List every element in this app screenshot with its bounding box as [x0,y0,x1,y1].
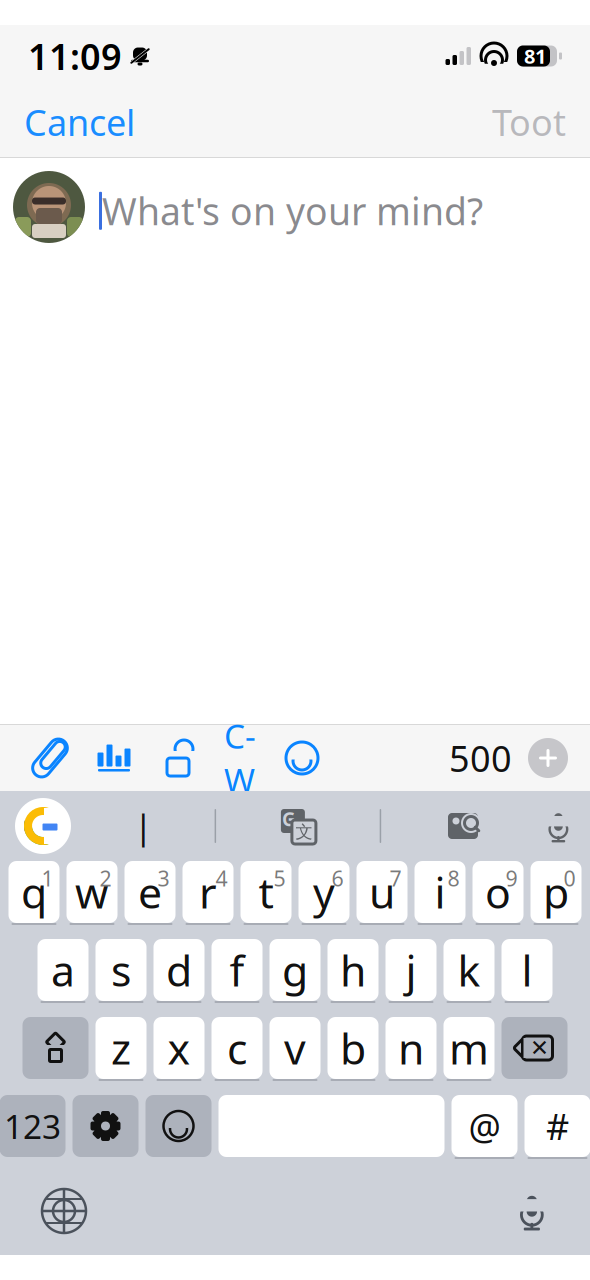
staticText: b [340,1020,366,1076]
button[interactable]: Image search [443,806,483,846]
button[interactable]: s [95,939,146,1001]
button[interactable]: z [95,1017,146,1079]
button[interactable]: Insert emoji [270,738,334,778]
button[interactable]: Shift [22,1017,88,1079]
button[interactable]: Toot [468,84,590,160]
staticText: e [138,864,162,920]
button[interactable]: Translate [278,806,318,846]
staticText: o [485,864,511,920]
button[interactable]: y [298,861,349,923]
staticText: t [258,864,273,920]
button[interactable]: f [211,939,262,1001]
button[interactable]: Cancel [0,84,159,160]
staticText: 文 [295,821,312,843]
button[interactable]: w [66,861,117,923]
button[interactable]: n [385,1017,436,1079]
staticText: What's on your mind? [102,186,483,236]
button[interactable]: Google [0,797,72,855]
button[interactable]: m [443,1017,494,1079]
button[interactable]: k [443,939,494,1001]
staticText: a [51,942,75,998]
staticText: 4 [215,864,227,892]
staticText: k [457,942,480,998]
staticText: c [227,1020,247,1076]
button[interactable]: Keyboard settings [72,1095,138,1157]
staticText: v [284,1020,306,1076]
staticText: x [167,1020,190,1076]
staticText: l [521,942,532,998]
button[interactable]: g [269,939,320,1001]
staticText: G [282,807,296,831]
staticText: 11:09 [28,32,122,80]
button[interactable]: Voice input [545,808,590,844]
staticText: ✕ [530,1035,549,1061]
staticText: 7 [389,864,401,892]
button[interactable]: 123 [0,1095,65,1157]
button[interactable]: Delete [501,1017,567,1079]
staticText: 5 [273,864,285,892]
button[interactable]: o [472,861,523,923]
button[interactable]: a [37,939,88,1001]
staticText: 2 [99,864,111,892]
staticText: 6 [331,864,343,892]
button[interactable]: b [327,1017,378,1079]
button[interactable]: # [524,1095,590,1157]
staticText: j [405,942,416,998]
staticText: @ [468,1102,500,1150]
staticText: r [199,864,217,920]
button[interactable]: r [182,861,233,923]
button[interactable]: Dictate [516,1189,590,1233]
button[interactable]: t [240,861,291,923]
button[interactable]: Switch keyboard [0,1187,88,1235]
button[interactable]: e [124,861,175,923]
staticText: CW [224,714,256,802]
staticText: | [134,803,153,849]
button[interactable]: Add attachment [18,738,82,778]
button[interactable]: Add poll [82,738,146,778]
staticText: s [111,942,131,998]
staticText: 0 [563,864,575,892]
button[interactable]: c [211,1017,262,1079]
button[interactable]: l [501,939,552,1001]
staticText: w [75,864,109,920]
button[interactable]: h [327,939,378,1001]
button[interactable]: i [414,861,465,923]
button[interactable]: u [356,861,407,923]
button[interactable]: x [153,1017,204,1079]
staticText: g [282,942,308,998]
button[interactable]: Emoji [145,1095,211,1157]
staticText: n [398,1020,424,1076]
staticText: f [229,942,244,998]
staticText: q [21,864,47,920]
staticText: 123 [4,1104,61,1148]
button[interactable]: CW [210,738,270,778]
staticText: Toot [492,98,566,146]
staticText: h [340,942,366,998]
staticText: p [543,864,569,920]
staticText: Cancel [24,98,135,146]
button[interactable]: Visibility [146,738,210,778]
staticText: 9 [505,864,517,892]
button[interactable]: v [269,1017,320,1079]
staticText: z [111,1020,131,1076]
staticText: # [546,1102,569,1150]
button[interactable]: Space [218,1095,444,1157]
staticText: 500 [449,734,512,782]
staticText: 3 [157,864,169,892]
staticText: d [166,942,192,998]
button[interactable]: j [385,939,436,1001]
staticText: y [313,864,335,920]
button[interactable]: p [530,861,581,923]
staticText: u [369,864,395,920]
staticText: 1 [41,864,53,892]
button[interactable]: @ [451,1095,517,1157]
staticText: i [434,864,445,920]
staticText: m [449,1020,489,1076]
button[interactable]: q [8,861,59,923]
staticText: 81 [524,43,546,69]
button[interactable]: d [153,939,204,1001]
staticText: 8 [447,864,459,892]
button[interactable]: Add [512,738,572,778]
